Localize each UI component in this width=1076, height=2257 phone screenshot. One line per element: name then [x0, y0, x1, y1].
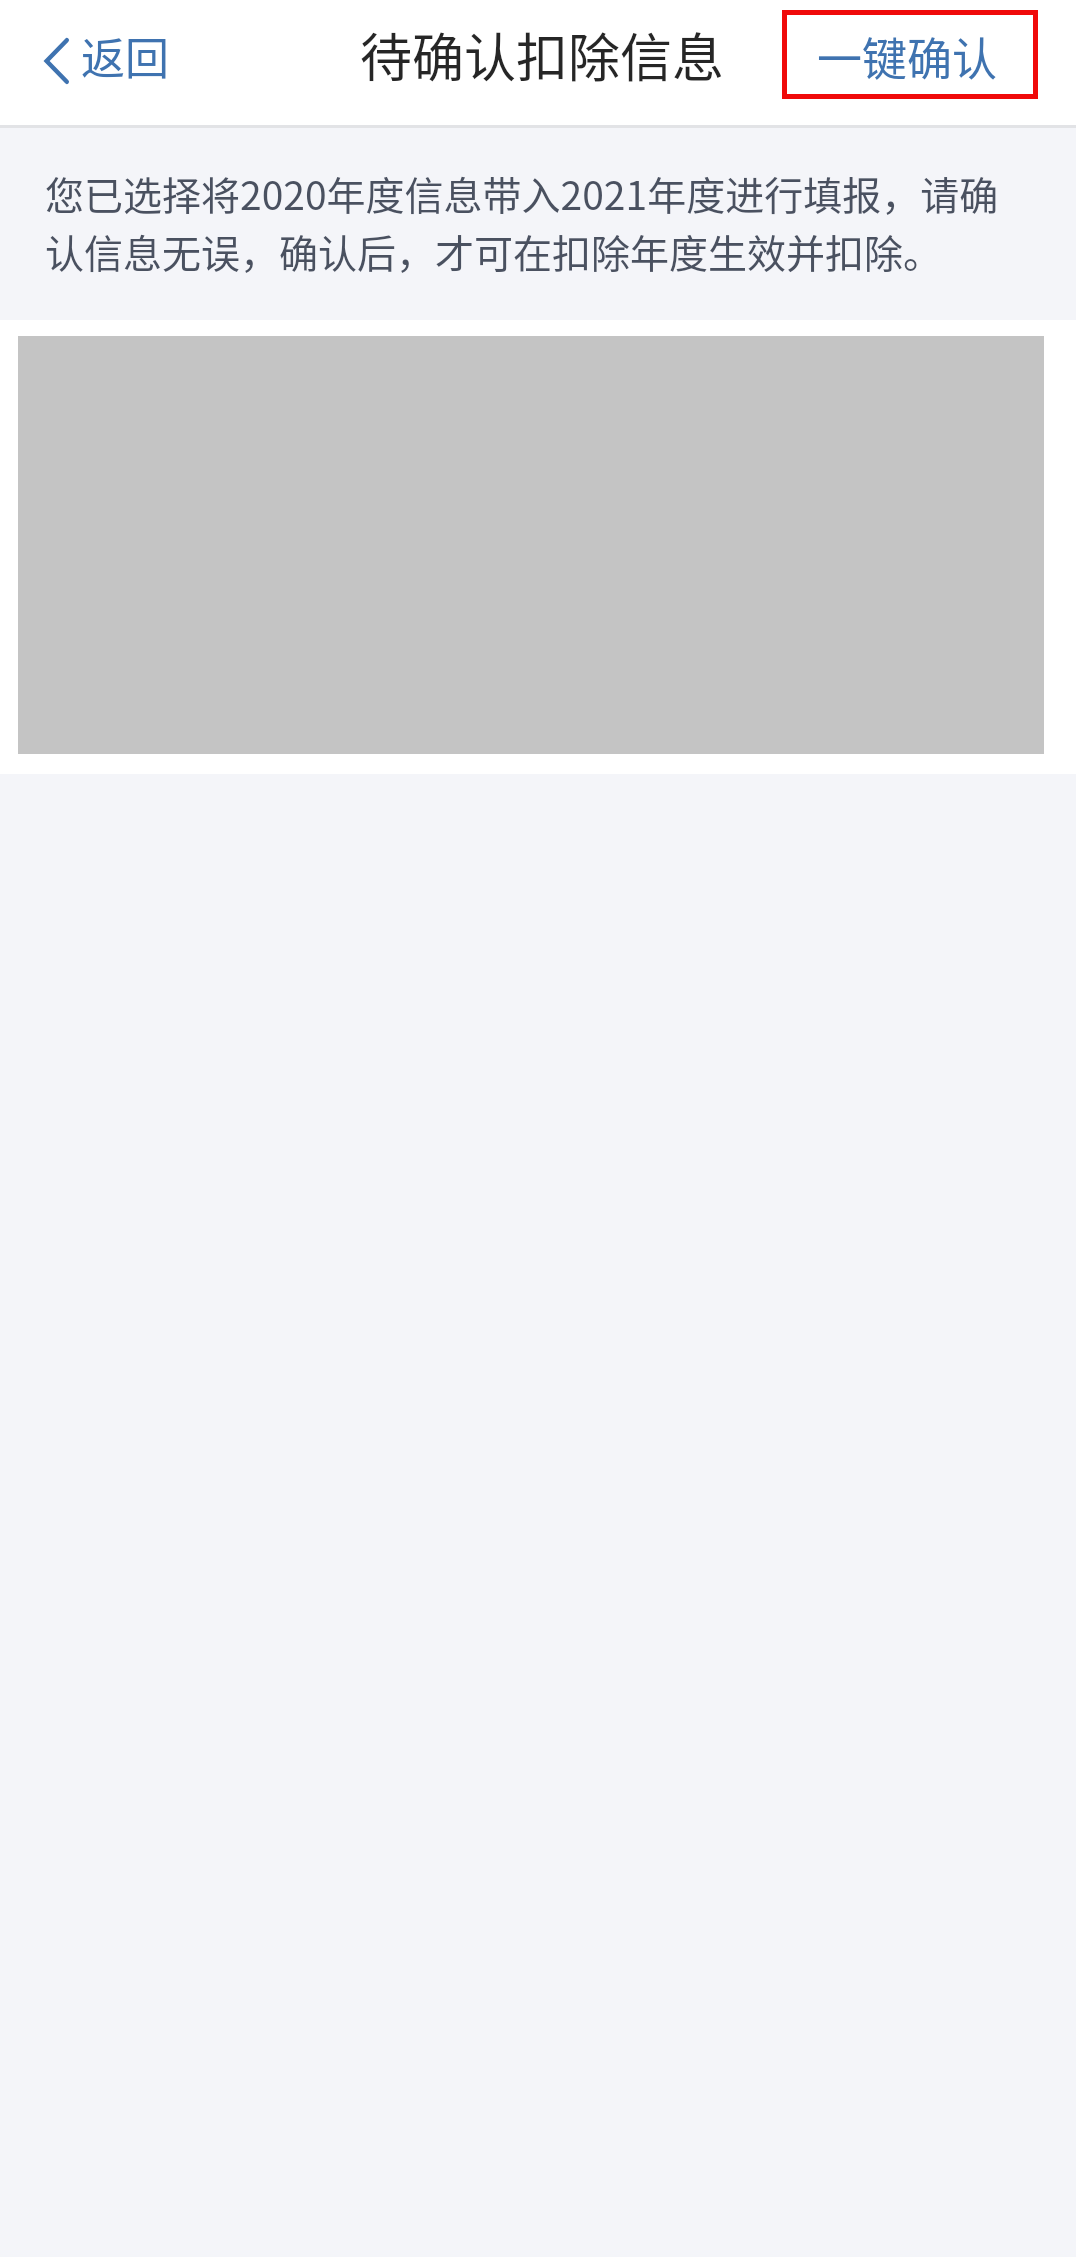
button[interactable]: 返回 — [0, 4, 193, 118]
other: 返回 — [44, 38, 69, 84]
button[interactable]: 一键确认 — [782, 10, 1038, 99]
staticText: 您已选择将2020年度信息带入2021年度进行填报，请确 认信息无误，确认后，才… — [45, 164, 1028, 280]
staticText: 待确认扣除信息 — [360, 17, 725, 92]
staticText: 返回 — [81, 24, 169, 88]
staticText: 一键确认 — [817, 24, 998, 89]
